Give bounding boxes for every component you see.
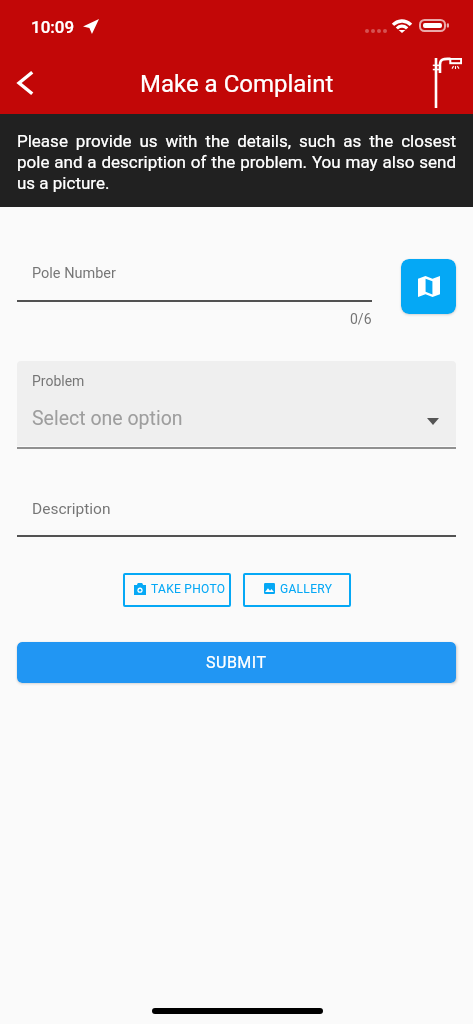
button[interactable]: Back bbox=[1, 59, 49, 107]
staticText: TAKE PHOTO bbox=[151, 582, 226, 596]
staticText: Please provide us with the details, such… bbox=[17, 131, 456, 193]
button[interactable]: Problem bbox=[17, 361, 456, 446]
button[interactable]: Open map bbox=[401, 259, 456, 314]
button[interactable]: GALLERY bbox=[243, 573, 351, 607]
staticText: GALLERY bbox=[280, 582, 333, 596]
button[interactable]: SUBMIT bbox=[17, 642, 456, 683]
button[interactable]: TAKE PHOTO bbox=[123, 573, 231, 607]
staticText: 0/6 bbox=[350, 311, 372, 327]
button[interactable]: Street light bbox=[428, 52, 468, 114]
staticText: 10:09 bbox=[31, 17, 75, 37]
staticText: Pole Number bbox=[32, 265, 116, 282]
staticText: Description bbox=[32, 500, 111, 518]
staticText: Select one option bbox=[32, 407, 183, 430]
staticText: Make a Complaint bbox=[140, 70, 334, 98]
staticText: SUBMIT bbox=[206, 653, 267, 672]
staticText: Problem bbox=[32, 373, 85, 389]
